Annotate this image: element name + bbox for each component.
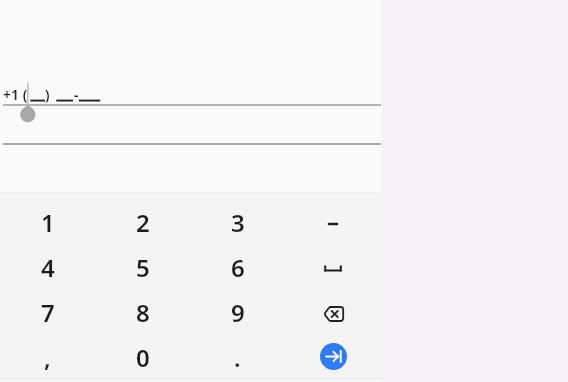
button[interactable]: [285, 336, 380, 381]
button[interactable]: [285, 201, 380, 246]
button[interactable]: 2: [95, 201, 190, 246]
staticText: ): [45, 85, 50, 104]
button[interactable]: .: [190, 336, 285, 381]
button[interactable]: [320, 343, 347, 370]
staticText: 1: [41, 206, 55, 239]
staticText: 5: [136, 251, 150, 284]
staticText: 8: [136, 296, 150, 329]
staticText: +1 (: [3, 85, 28, 104]
button[interactable]: 8: [95, 291, 190, 336]
button[interactable]: ,: [0, 336, 95, 381]
button[interactable]: 1: [0, 201, 95, 246]
staticText: ,: [44, 341, 51, 374]
button[interactable]: 0: [95, 336, 190, 381]
staticText: 2: [136, 206, 150, 239]
button[interactable]: 5: [95, 246, 190, 291]
staticText: .: [234, 341, 241, 374]
button[interactable]: 7: [0, 291, 95, 336]
staticText: 9: [231, 296, 245, 329]
button[interactable]: [285, 291, 380, 336]
staticText: 3: [231, 206, 245, 239]
button[interactable]: 4: [0, 246, 95, 291]
staticText: 0: [136, 341, 150, 374]
staticText: -: [74, 85, 79, 104]
button[interactable]: 9: [190, 291, 285, 336]
button[interactable]: 6: [190, 246, 285, 291]
button[interactable]: [0, 80, 382, 106]
staticText: 4: [41, 251, 55, 284]
button[interactable]: [285, 246, 380, 291]
button[interactable]: 3: [190, 201, 285, 246]
staticText: 7: [41, 296, 55, 329]
staticText: 6: [231, 251, 245, 284]
